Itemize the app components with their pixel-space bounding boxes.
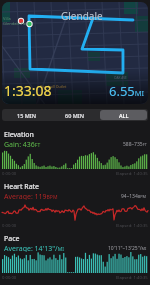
staticText: Elapsed: 1:40:35 — [116, 171, 148, 177]
staticText: 0:00:00 — [2, 275, 17, 281]
staticText: 94–134BPM — [121, 193, 147, 200]
button[interactable]: ALL — [100, 110, 147, 120]
button[interactable]: 60 MIN — [51, 110, 98, 120]
staticText: 588–735FT — [123, 141, 147, 148]
staticText: Glendale — [61, 9, 103, 23]
staticText: 0:00:00 — [2, 171, 17, 177]
staticText: 1:33:08 — [4, 81, 52, 100]
staticText: 10'11"–13'25"/MI — [108, 245, 147, 252]
staticText: Villa Glendale Park — [3, 16, 30, 26]
staticText: Elapsed: 1:40:35 — [116, 223, 148, 229]
staticText: 15 MIN — [17, 112, 36, 119]
button[interactable]: Elevation — [0, 126, 150, 178]
staticText: Pace — [4, 234, 20, 244]
button[interactable]: Heart Rate — [0, 178, 150, 230]
staticText: Heart Rate — [4, 182, 40, 192]
staticText: OAK AVE — [114, 76, 127, 80]
staticText: 6.55MI — [109, 82, 145, 100]
staticText: 60 MIN — [65, 112, 84, 119]
staticText: Average: 119BPM — [4, 192, 58, 200]
staticText: ALL — [119, 112, 129, 119]
staticText: 0:00:00 — [2, 223, 17, 229]
staticText: Average: 14'13"/MI — [4, 244, 64, 252]
button[interactable]: 15 MIN — [3, 110, 49, 120]
staticText: Gain: 436FT — [4, 140, 41, 148]
button[interactable]: Route map — [2, 2, 148, 104]
staticText: Elevation — [4, 130, 34, 140]
staticText: Goodwill Outlet — [40, 84, 67, 89]
button[interactable]: Pace — [0, 230, 150, 282]
staticText: Elapsed: 1:40:35 — [116, 275, 148, 281]
